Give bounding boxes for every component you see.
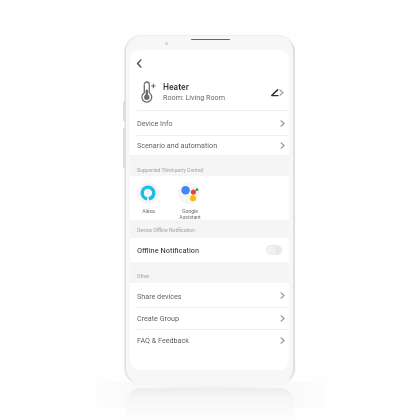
staticText: Heater — [163, 82, 189, 92]
button[interactable]: Alexa — [137, 182, 159, 204]
staticText: Share devices — [137, 292, 182, 300]
staticText: Scenario and automation — [137, 141, 218, 149]
staticText: FAQ & Feedback — [137, 336, 189, 344]
button[interactable]: Google Assistant — [178, 182, 200, 204]
button[interactable]: Back — [134, 57, 146, 69]
button[interactable]: Edit device name — [270, 88, 280, 98]
staticText: Other — [137, 273, 150, 279]
staticText: Create Group — [137, 314, 180, 322]
button[interactable]: Offline Notification — [266, 245, 282, 255]
staticText: Offline Notification — [137, 246, 200, 255]
button[interactable]: FAQ & Feedback — [130, 329, 289, 351]
button[interactable]: Scenario and automation — [130, 135, 289, 155]
staticText: Google Assistant — [179, 208, 201, 220]
staticText: Room: Living Room — [163, 93, 226, 101]
button[interactable]: Share devices — [130, 283, 289, 308]
button[interactable] — [130, 75, 289, 110]
button[interactable]: Offline Notification — [130, 238, 289, 262]
staticText: Supported Third-party Control — [137, 167, 204, 173]
button[interactable]: Device Info — [130, 111, 289, 135]
button[interactable]: Create Group — [130, 307, 289, 329]
staticText: Alexa — [142, 208, 155, 214]
staticText: Device Offline Notification — [137, 227, 196, 233]
staticText: Device Info — [137, 119, 173, 127]
